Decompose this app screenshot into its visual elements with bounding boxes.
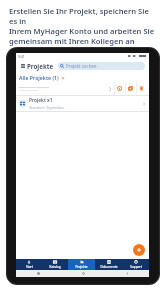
button[interactable]: Öffnen [106,85,114,93]
button[interactable]: Projekt x1 [16,96,149,111]
button[interactable]: Home [61,270,105,277]
button[interactable]: Recents [16,270,61,277]
staticText: gemeinsam mit Ihren Kollegen an einem Pr… [9,36,158,56]
staticText: Projekt suchen [66,63,97,69]
staticText: Standort: Irgendwo [29,105,64,110]
staticText: Katalog [49,265,61,269]
staticText: Projekte [27,62,54,70]
staticText: 9:41 [18,54,25,59]
button[interactable]: Alle Projekte (1) [19,74,65,81]
button[interactable]: Support [122,259,149,270]
staticText: Projekte [75,265,88,269]
staticText: Projekt x1 [29,97,53,104]
button[interactable]: Kopieren [125,82,136,95]
button[interactable]: Löschen [136,82,147,95]
staticText: Ihrem MyHager Konto und arbeiten Sie [9,26,155,36]
staticText: Support [130,265,142,269]
staticText: Dokumente [100,265,118,269]
staticText: Erstellen Sie Ihr Projekt, speichern Sie… [9,6,158,26]
button[interactable]: Menü [19,62,26,69]
staticText: Start [26,265,33,269]
button[interactable]: Back [105,270,149,277]
button[interactable]: Projekt suchen [58,62,145,70]
button[interactable]: Projekte [68,259,95,270]
button[interactable]: Start [16,259,42,270]
button[interactable]: Neues Projekt [133,244,145,256]
button[interactable]: Dokumente [95,259,122,270]
button[interactable]: Information [114,82,125,95]
staticText: Alle Projekte (1) [19,74,59,81]
button[interactable]: Katalog [42,259,68,270]
